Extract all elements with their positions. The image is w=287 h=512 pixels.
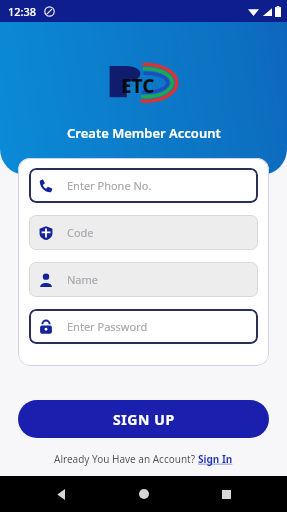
staticText: Code <box>67 225 94 240</box>
staticText: Sign In <box>198 452 233 466</box>
staticText: SIGN UP <box>113 410 175 429</box>
staticText: 12:38 <box>8 4 37 19</box>
button[interactable]: Code <box>29 215 258 250</box>
staticText: Enter Phone No. <box>67 178 152 193</box>
staticText: Already You Have an Account? <box>54 452 198 466</box>
button[interactable]: Enter Phone No. <box>29 168 258 203</box>
staticText: Create Member Account <box>67 124 221 142</box>
button[interactable]: Name <box>29 262 258 297</box>
button[interactable]: Enter Password <box>29 309 258 344</box>
button[interactable]: Recent apps <box>213 481 239 507</box>
staticText: Name <box>67 272 99 287</box>
button[interactable]: Back <box>48 481 74 507</box>
staticText: Enter Password <box>67 319 148 334</box>
button[interactable]: Sign In <box>198 452 233 466</box>
button[interactable]: Home <box>131 481 157 507</box>
button[interactable]: SIGN UP <box>18 400 269 438</box>
staticText: ETC <box>121 73 155 99</box>
